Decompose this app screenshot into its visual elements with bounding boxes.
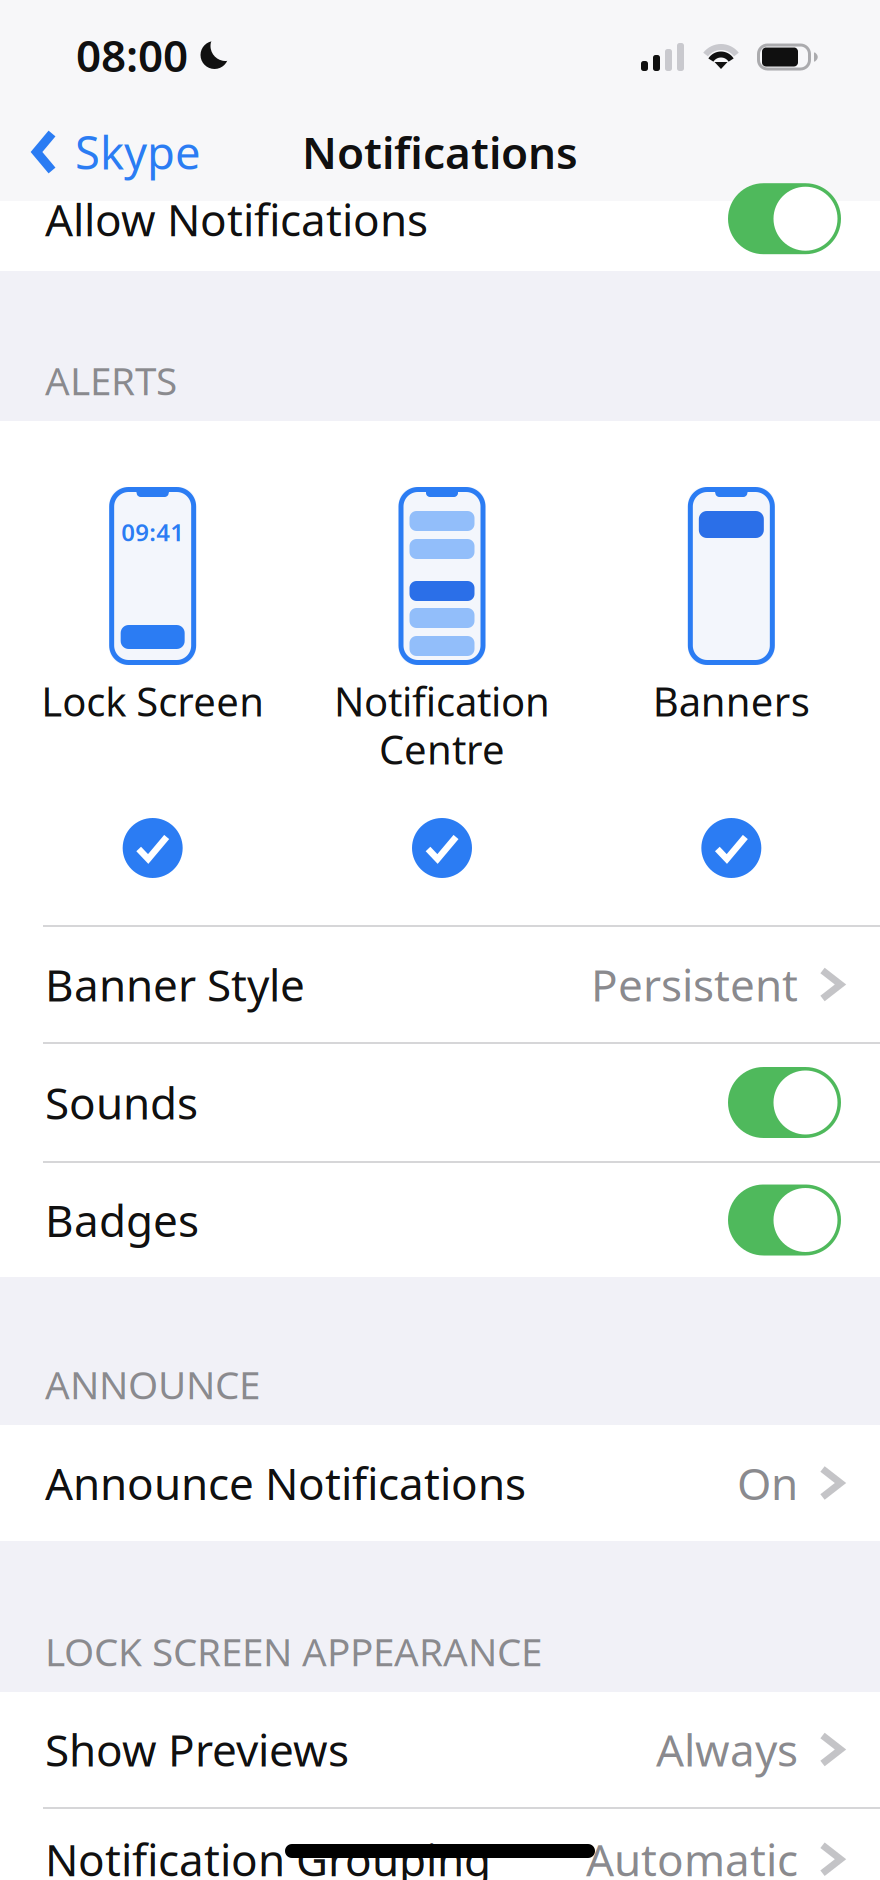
staticText: Always [656,1720,798,1779]
button[interactable]: Banner Style [0,927,880,1042]
button[interactable]: Badges [0,1163,880,1277]
staticText: Announce Notifications [45,1454,526,1512]
button[interactable]: Notification [297,421,587,925]
staticText: Automatic [586,1830,798,1880]
button[interactable]: Skype [31,112,215,192]
staticText: Sounds [45,1073,198,1132]
staticText: Badges [45,1191,199,1249]
button[interactable]: 09:41 [8,421,297,925]
staticText: Centre [379,722,505,775]
staticText: Notification [334,674,550,727]
button[interactable]: Sounds [0,1044,880,1161]
staticText: Banners [653,674,810,727]
staticText: Persistent [591,955,798,1014]
staticText: Skype [75,122,201,182]
staticText: 08:00 [76,26,188,84]
button[interactable]: Announce Notifications [0,1425,880,1541]
staticText: Show Previews [45,1720,349,1779]
staticText: Notifications [302,123,578,181]
button[interactable]: Show Previews [0,1692,880,1807]
staticText: Banner Style [45,955,305,1014]
staticText: ANNOUNCE [45,1359,260,1410]
staticText: Allow Notifications [45,190,428,248]
button[interactable]: Banners [587,421,876,925]
staticText: On [737,1454,798,1512]
staticText: ALERTS [45,355,177,406]
button[interactable]: Notification Grouping [0,1809,880,1880]
staticText: LOCK SCREEN APPEARANCE [45,1626,542,1677]
staticText: 09:41 [121,516,184,548]
staticText: Lock Screen [41,674,264,727]
staticText: Notification Grouping [45,1830,491,1880]
